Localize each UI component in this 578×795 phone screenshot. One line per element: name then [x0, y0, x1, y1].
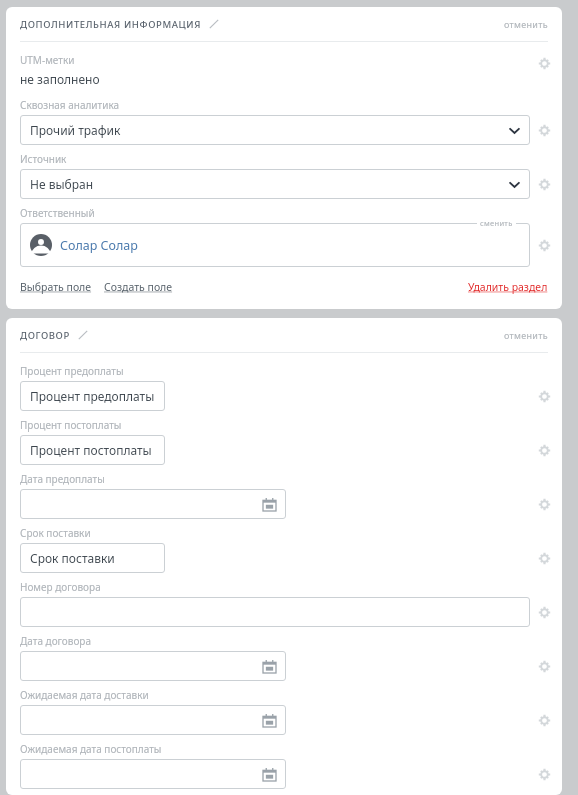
button[interactable]: Настройки поля — [534, 764, 554, 784]
button[interactable]: Настройки поля — [534, 174, 554, 194]
button[interactable]: Настройки поля — [534, 120, 554, 140]
button[interactable] — [20, 597, 530, 627]
button[interactable]: Настройки поля — [534, 235, 554, 255]
staticText: Процент предоплаты — [20, 364, 124, 378]
staticText: ДОПОЛНИТЕЛЬНАЯ ИНФОРМАЦИЯ — [20, 18, 201, 31]
button[interactable]: Настройки поля — [534, 440, 554, 460]
button[interactable]: Солар Солар — [20, 223, 530, 267]
button[interactable] — [20, 759, 286, 789]
button[interactable] — [20, 705, 286, 735]
button[interactable]: Настройки поля — [534, 386, 554, 406]
staticText: Срок поставки — [30, 550, 115, 566]
staticText: Процент постоплаты — [30, 442, 152, 458]
staticText: Срок поставки — [20, 526, 91, 540]
staticText: Источник — [20, 152, 67, 166]
button[interactable] — [20, 489, 286, 519]
button[interactable]: Настройки поля — [534, 656, 554, 676]
button[interactable]: Настройки поля — [534, 494, 554, 514]
button[interactable] — [20, 651, 286, 681]
button[interactable]: Выбрать поле — [20, 280, 92, 294]
staticText: Процент предоплаты — [30, 388, 155, 404]
staticText: Дата договора — [20, 634, 92, 648]
staticText: Не выбран — [30, 176, 94, 192]
button[interactable]: Настройки поля — [534, 710, 554, 730]
button[interactable]: отменить — [504, 329, 548, 341]
button[interactable]: Не выбран — [20, 169, 530, 199]
staticText: Солар Солар — [60, 237, 138, 254]
button[interactable]: Редактировать — [208, 18, 220, 30]
staticText: Ответственный — [20, 206, 95, 220]
staticText: UTM-метки — [20, 53, 75, 67]
staticText: Ожидаемая дата постоплаты — [20, 742, 162, 756]
button[interactable]: сменить — [480, 218, 513, 228]
button[interactable]: Прочий трафик — [20, 115, 530, 145]
button[interactable]: отменить — [504, 18, 548, 30]
staticText: ДОГОВОР — [20, 329, 70, 342]
button[interactable]: Создать поле — [104, 280, 173, 294]
button[interactable]: Настройки поля — [534, 548, 554, 568]
button[interactable]: Настройки поля — [534, 53, 554, 73]
staticText: Ожидаемая дата доставки — [20, 688, 149, 702]
button[interactable]: Удалить раздел — [468, 280, 548, 294]
staticText: не заполнено — [20, 71, 100, 87]
staticText: сменить — [480, 218, 513, 228]
staticText: Прочий трафик — [30, 122, 121, 138]
staticText: Процент постоплаты — [20, 418, 122, 432]
button[interactable]: Настройки поля — [534, 602, 554, 622]
staticText: Сквозная аналитика — [20, 98, 120, 112]
staticText: Дата предоплаты — [20, 472, 105, 486]
button[interactable]: Процент предоплаты — [20, 381, 165, 411]
staticText: Номер договора — [20, 580, 101, 594]
button[interactable]: Редактировать — [77, 329, 89, 341]
button[interactable]: Процент постоплаты — [20, 435, 165, 465]
button[interactable]: Срок поставки — [20, 543, 165, 573]
